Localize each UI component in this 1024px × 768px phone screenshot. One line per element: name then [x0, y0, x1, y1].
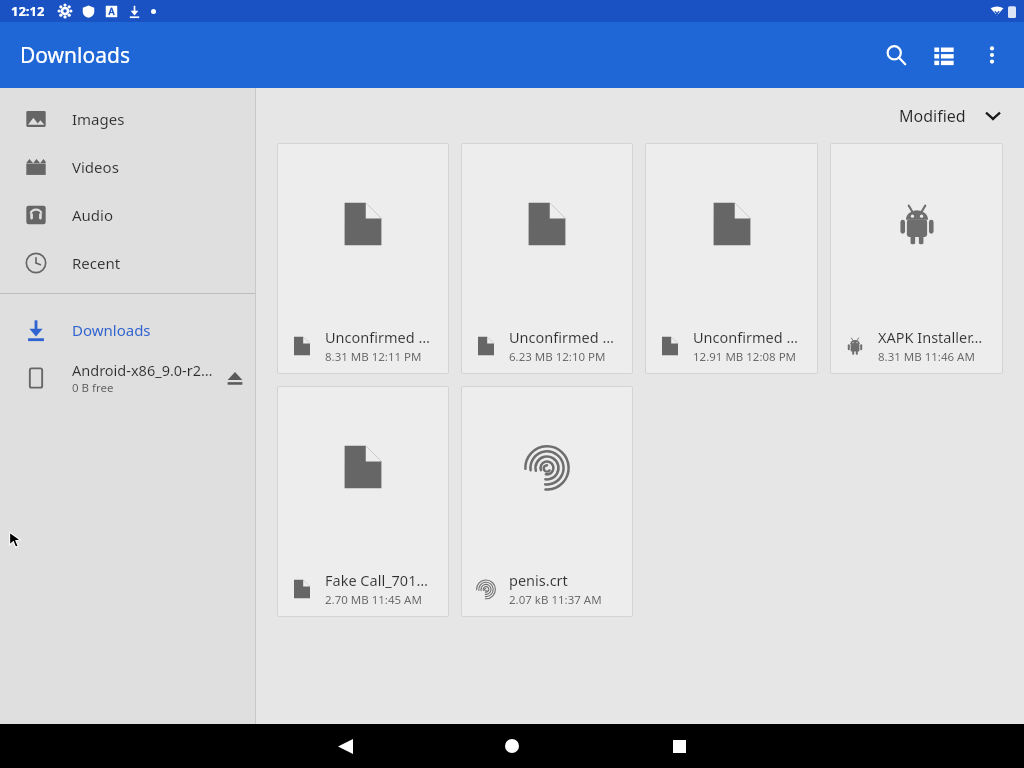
staticText: 6.23 MB 12:10 PM: [509, 349, 606, 365]
button[interactable]: More options: [968, 31, 1016, 79]
staticText: Images: [72, 109, 125, 129]
button[interactable]: Modified: [891, 99, 1010, 133]
staticText: Audio: [72, 205, 114, 225]
staticText: Downloads: [20, 41, 130, 70]
staticText: 2.70 MB 11:45 AM: [325, 592, 422, 608]
staticText: Recent: [72, 253, 121, 273]
button[interactable]: XAPK Installer…: [831, 144, 1002, 373]
button[interactable]: Home: [492, 726, 532, 766]
staticText: penis.crt: [509, 570, 568, 590]
staticText: Unconfirmed …: [325, 327, 430, 347]
staticText: Android-x86_9.0-r2…: [72, 360, 213, 380]
staticText: Modified: [899, 105, 966, 127]
button[interactable]: Unconfirmed …: [646, 144, 817, 373]
button[interactable]: Unconfirmed …: [462, 144, 632, 373]
button[interactable]: Images: [0, 95, 255, 143]
button[interactable]: Recent: [0, 239, 255, 287]
staticText: Unconfirmed …: [693, 327, 798, 347]
staticText: Videos: [72, 157, 119, 177]
staticText: 8.31 MB 12:11 PM: [325, 349, 422, 365]
button[interactable]: Audio: [0, 191, 255, 239]
button[interactable]: Downloads: [0, 306, 255, 354]
button[interactable]: Unconfirmed …: [278, 144, 448, 373]
staticText: XAPK Installer…: [878, 327, 983, 347]
staticText: 8.31 MB 11:46 AM: [878, 349, 975, 365]
staticText: 12:12: [11, 2, 45, 20]
staticText: Unconfirmed …: [509, 327, 614, 347]
staticText: 12.91 MB 12:08 PM: [693, 349, 797, 365]
button[interactable]: Recents: [659, 726, 699, 766]
button[interactable]: penis.crt: [462, 387, 632, 616]
button[interactable]: Eject: [215, 358, 255, 398]
button[interactable]: Videos: [0, 143, 255, 191]
button[interactable]: Back: [325, 726, 365, 766]
staticText: 0 B free: [72, 380, 114, 396]
button[interactable]: Fake Call_701…: [278, 387, 448, 616]
staticText: Fake Call_701…: [325, 570, 428, 590]
button[interactable]: Switch to list view: [920, 31, 968, 79]
staticText: Downloads: [72, 320, 151, 340]
staticText: 2.07 kB 11:37 AM: [509, 592, 602, 608]
button[interactable]: Search: [872, 31, 920, 79]
button[interactable]: Android-x86_9.0-r2…: [0, 354, 255, 402]
